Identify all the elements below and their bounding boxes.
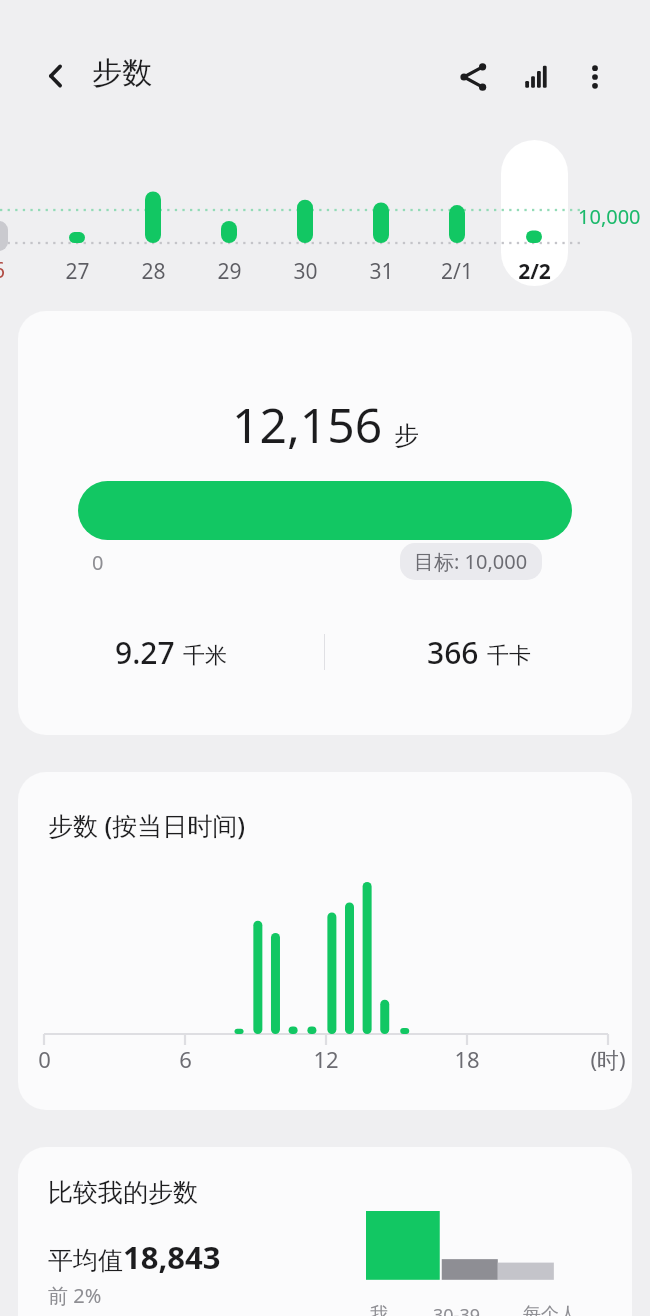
staticText: 平均值	[48, 1245, 123, 1276]
staticText: 31	[369, 257, 394, 286]
staticText: 12	[313, 1044, 339, 1074]
staticText: 18	[454, 1044, 480, 1074]
staticText: 12,156	[232, 392, 383, 457]
staticText: 步	[394, 420, 419, 451]
staticText: 9.27	[115, 632, 175, 673]
staticText: 千米	[183, 642, 227, 670]
button[interactable]: 比较我的步数	[18, 1147, 632, 1316]
staticText: 30	[293, 257, 318, 286]
staticText: 目标: 10,000	[414, 548, 528, 575]
button[interactable]: More options	[570, 52, 620, 102]
staticText: (时)	[590, 1044, 626, 1074]
staticText: 2/1	[441, 257, 473, 286]
staticText: 步数 (按当日时间)	[48, 808, 246, 842]
staticText: 29	[217, 257, 242, 286]
staticText: 18,843	[123, 1236, 221, 1278]
button[interactable]: Back	[32, 52, 80, 100]
button[interactable]: 步数	[90, 54, 154, 92]
staticText: 步数	[92, 54, 152, 92]
staticText: 0	[92, 549, 104, 576]
button[interactable]: Trends chart	[512, 52, 562, 102]
staticText: 30-39	[433, 1303, 480, 1316]
staticText: 10,000	[578, 203, 641, 230]
staticText: 我	[370, 1303, 388, 1316]
staticText: 28	[141, 257, 166, 286]
button[interactable]: Selected day 2/2	[501, 140, 568, 286]
staticText: 27	[65, 257, 90, 286]
staticText: 6	[179, 1044, 192, 1074]
staticText: 比较我的步数	[48, 1177, 198, 1208]
staticText: 前 2%	[48, 1282, 102, 1309]
button[interactable]: 步数 (按当日时间)	[18, 772, 632, 1110]
staticText: 6	[0, 256, 6, 285]
staticText: 每个人	[523, 1303, 577, 1316]
button[interactable]: 12,156	[18, 311, 632, 735]
staticText: 366	[427, 632, 479, 673]
staticText: 0	[38, 1044, 51, 1074]
staticText: 2/2	[518, 257, 551, 286]
button[interactable]: Share	[448, 52, 498, 102]
staticText: 千卡	[487, 642, 531, 670]
